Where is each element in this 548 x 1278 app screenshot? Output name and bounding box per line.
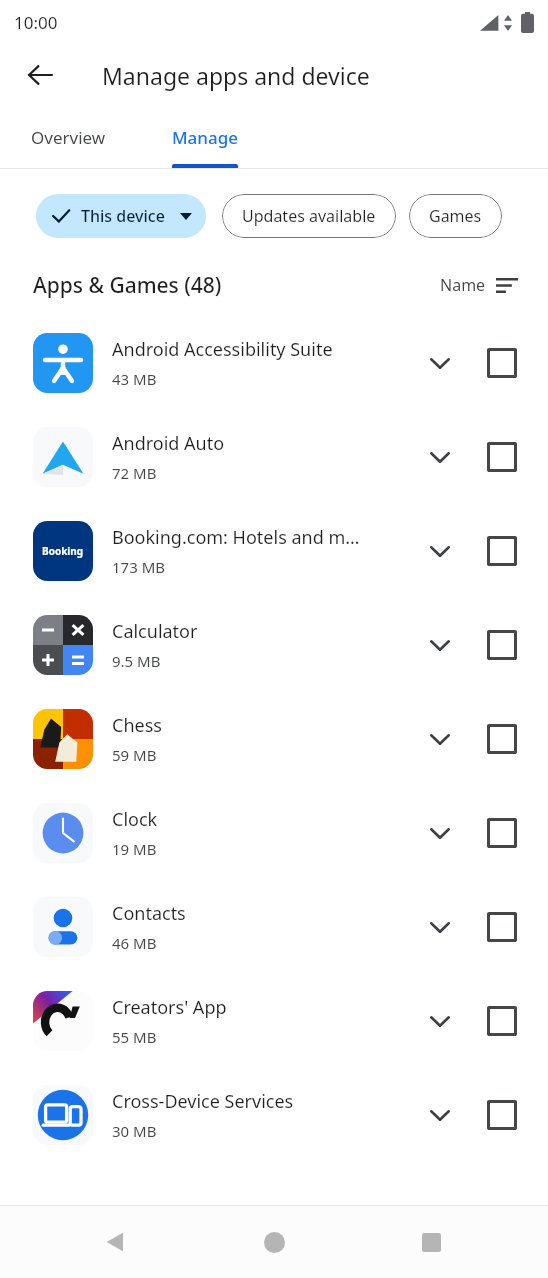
- staticText: 55 MB: [112, 1027, 157, 1047]
- button[interactable]: Clock: [0, 786, 548, 880]
- staticText: 19 MB: [112, 839, 157, 859]
- staticText: Updates available: [242, 205, 376, 227]
- staticText: 59 MB: [112, 745, 157, 765]
- staticText: 10:00: [14, 11, 58, 34]
- staticText: Android Accessibility Suite: [112, 337, 333, 362]
- staticText: 9.5 MB: [112, 651, 161, 671]
- staticText: Cross-Device Services: [112, 1089, 294, 1114]
- staticText: 30 MB: [112, 1121, 157, 1141]
- button[interactable]: Back: [14, 49, 66, 101]
- button[interactable]: Expand Calculator: [413, 618, 467, 672]
- button[interactable]: Select Clock: [477, 808, 527, 858]
- button[interactable]: Expand Android Auto: [413, 430, 467, 484]
- button[interactable]: Games: [409, 194, 502, 238]
- button[interactable]: Select Android Auto: [477, 432, 527, 482]
- button[interactable]: Creators' App: [0, 974, 548, 1068]
- button[interactable]: Home: [251, 1219, 297, 1265]
- staticText: Chess: [112, 713, 162, 738]
- button[interactable]: Select Calculator: [477, 620, 527, 670]
- button[interactable]: Contacts: [0, 880, 548, 974]
- button[interactable]: Android Accessibility Suite: [0, 316, 548, 410]
- staticText: 43 MB: [112, 369, 157, 389]
- button[interactable]: Name: [436, 270, 522, 300]
- button[interactable]: Cross-Device Services: [0, 1068, 548, 1162]
- staticText: Overview: [31, 126, 106, 149]
- staticText: Android Auto: [112, 431, 225, 456]
- button[interactable]: Overview: [0, 106, 137, 168]
- button[interactable]: Booking: [0, 504, 548, 598]
- staticText: Contacts: [112, 901, 186, 926]
- button[interactable]: Manage: [137, 106, 274, 168]
- staticText: Manage apps and device: [102, 60, 370, 91]
- button[interactable]: Expand Cross-Device Services: [413, 1088, 467, 1142]
- button[interactable]: Select Contacts: [477, 902, 527, 952]
- button[interactable]: Updates available: [222, 194, 396, 238]
- staticText: Calculator: [112, 619, 198, 644]
- button[interactable]: Expand Chess: [413, 712, 467, 766]
- button[interactable]: Select Creators' App: [477, 996, 527, 1046]
- button[interactable]: Select Chess: [477, 714, 527, 764]
- button[interactable]: Back: [92, 1219, 138, 1265]
- button[interactable]: Recent apps: [408, 1219, 454, 1265]
- button[interactable]: Expand Contacts: [413, 900, 467, 954]
- button[interactable]: Android Auto: [0, 410, 548, 504]
- button[interactable]: Expand Creators' App: [413, 994, 467, 1048]
- staticText: Games: [429, 205, 482, 227]
- staticText: Booking.com: Hotels and m…: [112, 525, 360, 550]
- button[interactable]: Select Booking.com: Hotels and m…: [477, 526, 527, 576]
- button[interactable]: This device: [36, 194, 206, 238]
- staticText: 72 MB: [112, 463, 157, 483]
- staticText: 46 MB: [112, 933, 157, 953]
- staticText: Creators' App: [112, 995, 227, 1020]
- staticText: Apps & Games (48): [33, 271, 222, 300]
- staticText: Booking: [42, 544, 84, 558]
- staticText: Clock: [112, 807, 158, 832]
- staticText: Name: [440, 274, 486, 296]
- staticText: 173 MB: [112, 557, 165, 577]
- button[interactable]: Calculator: [0, 598, 548, 692]
- button[interactable]: Chess: [0, 692, 548, 786]
- staticText: This device: [81, 205, 165, 227]
- staticText: Manage: [172, 126, 239, 149]
- button[interactable]: Select Cross-Device Services: [477, 1090, 527, 1140]
- button[interactable]: Expand Android Accessibility Suite: [413, 336, 467, 390]
- button[interactable]: Expand Clock: [413, 806, 467, 860]
- button[interactable]: Expand Booking.com: Hotels and m…: [413, 524, 467, 578]
- button[interactable]: Select Android Accessibility Suite: [477, 338, 527, 388]
